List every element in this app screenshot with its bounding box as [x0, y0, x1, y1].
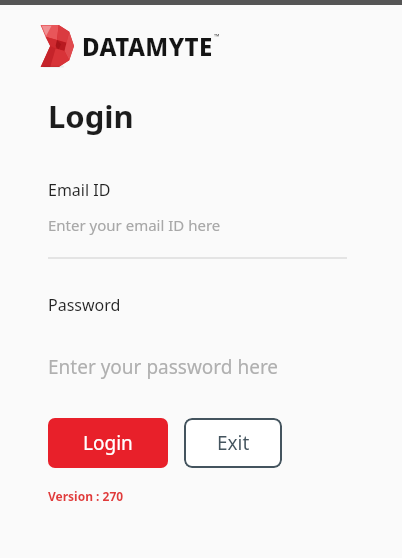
button[interactable]: Exit	[184, 418, 282, 468]
staticText: Enter your password here	[48, 354, 279, 380]
staticText: Login	[48, 95, 134, 137]
staticText: Password	[48, 294, 121, 316]
staticText: ™	[214, 32, 220, 42]
staticText: Login	[83, 430, 133, 456]
button[interactable]: Login	[48, 418, 168, 468]
staticText: Version : 270	[48, 488, 124, 504]
staticText: Enter your email ID here	[48, 215, 221, 235]
staticText: DATAMYTE	[82, 30, 213, 63]
other: DATAMYTE logo	[40, 25, 74, 67]
staticText: Exit	[217, 430, 250, 456]
staticText: Email ID	[48, 179, 111, 201]
button[interactable]: Email ID	[0, 179, 402, 259]
button[interactable]: Password	[0, 294, 402, 380]
